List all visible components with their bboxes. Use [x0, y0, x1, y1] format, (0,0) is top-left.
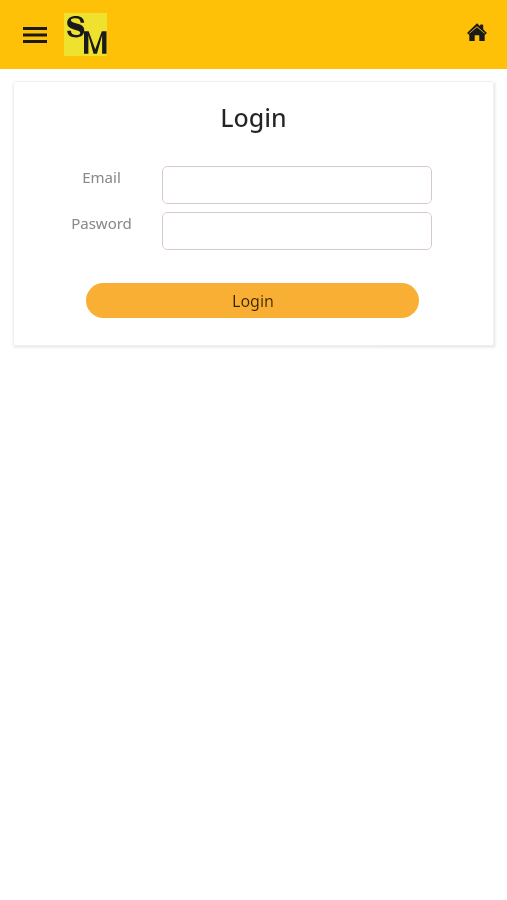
staticText: Login	[13, 100, 494, 134]
button[interactable]: Login	[86, 283, 419, 318]
staticText: Login	[232, 290, 274, 312]
staticText: Email	[21, 167, 182, 187]
button[interactable]: SM logo	[64, 13, 107, 56]
staticText: Pasword	[21, 213, 182, 233]
button[interactable]: Menu	[13, 13, 57, 57]
button[interactable]: Home	[455, 10, 499, 54]
button[interactable]: Pasword	[162, 212, 432, 250]
button[interactable]: Email	[162, 166, 432, 204]
